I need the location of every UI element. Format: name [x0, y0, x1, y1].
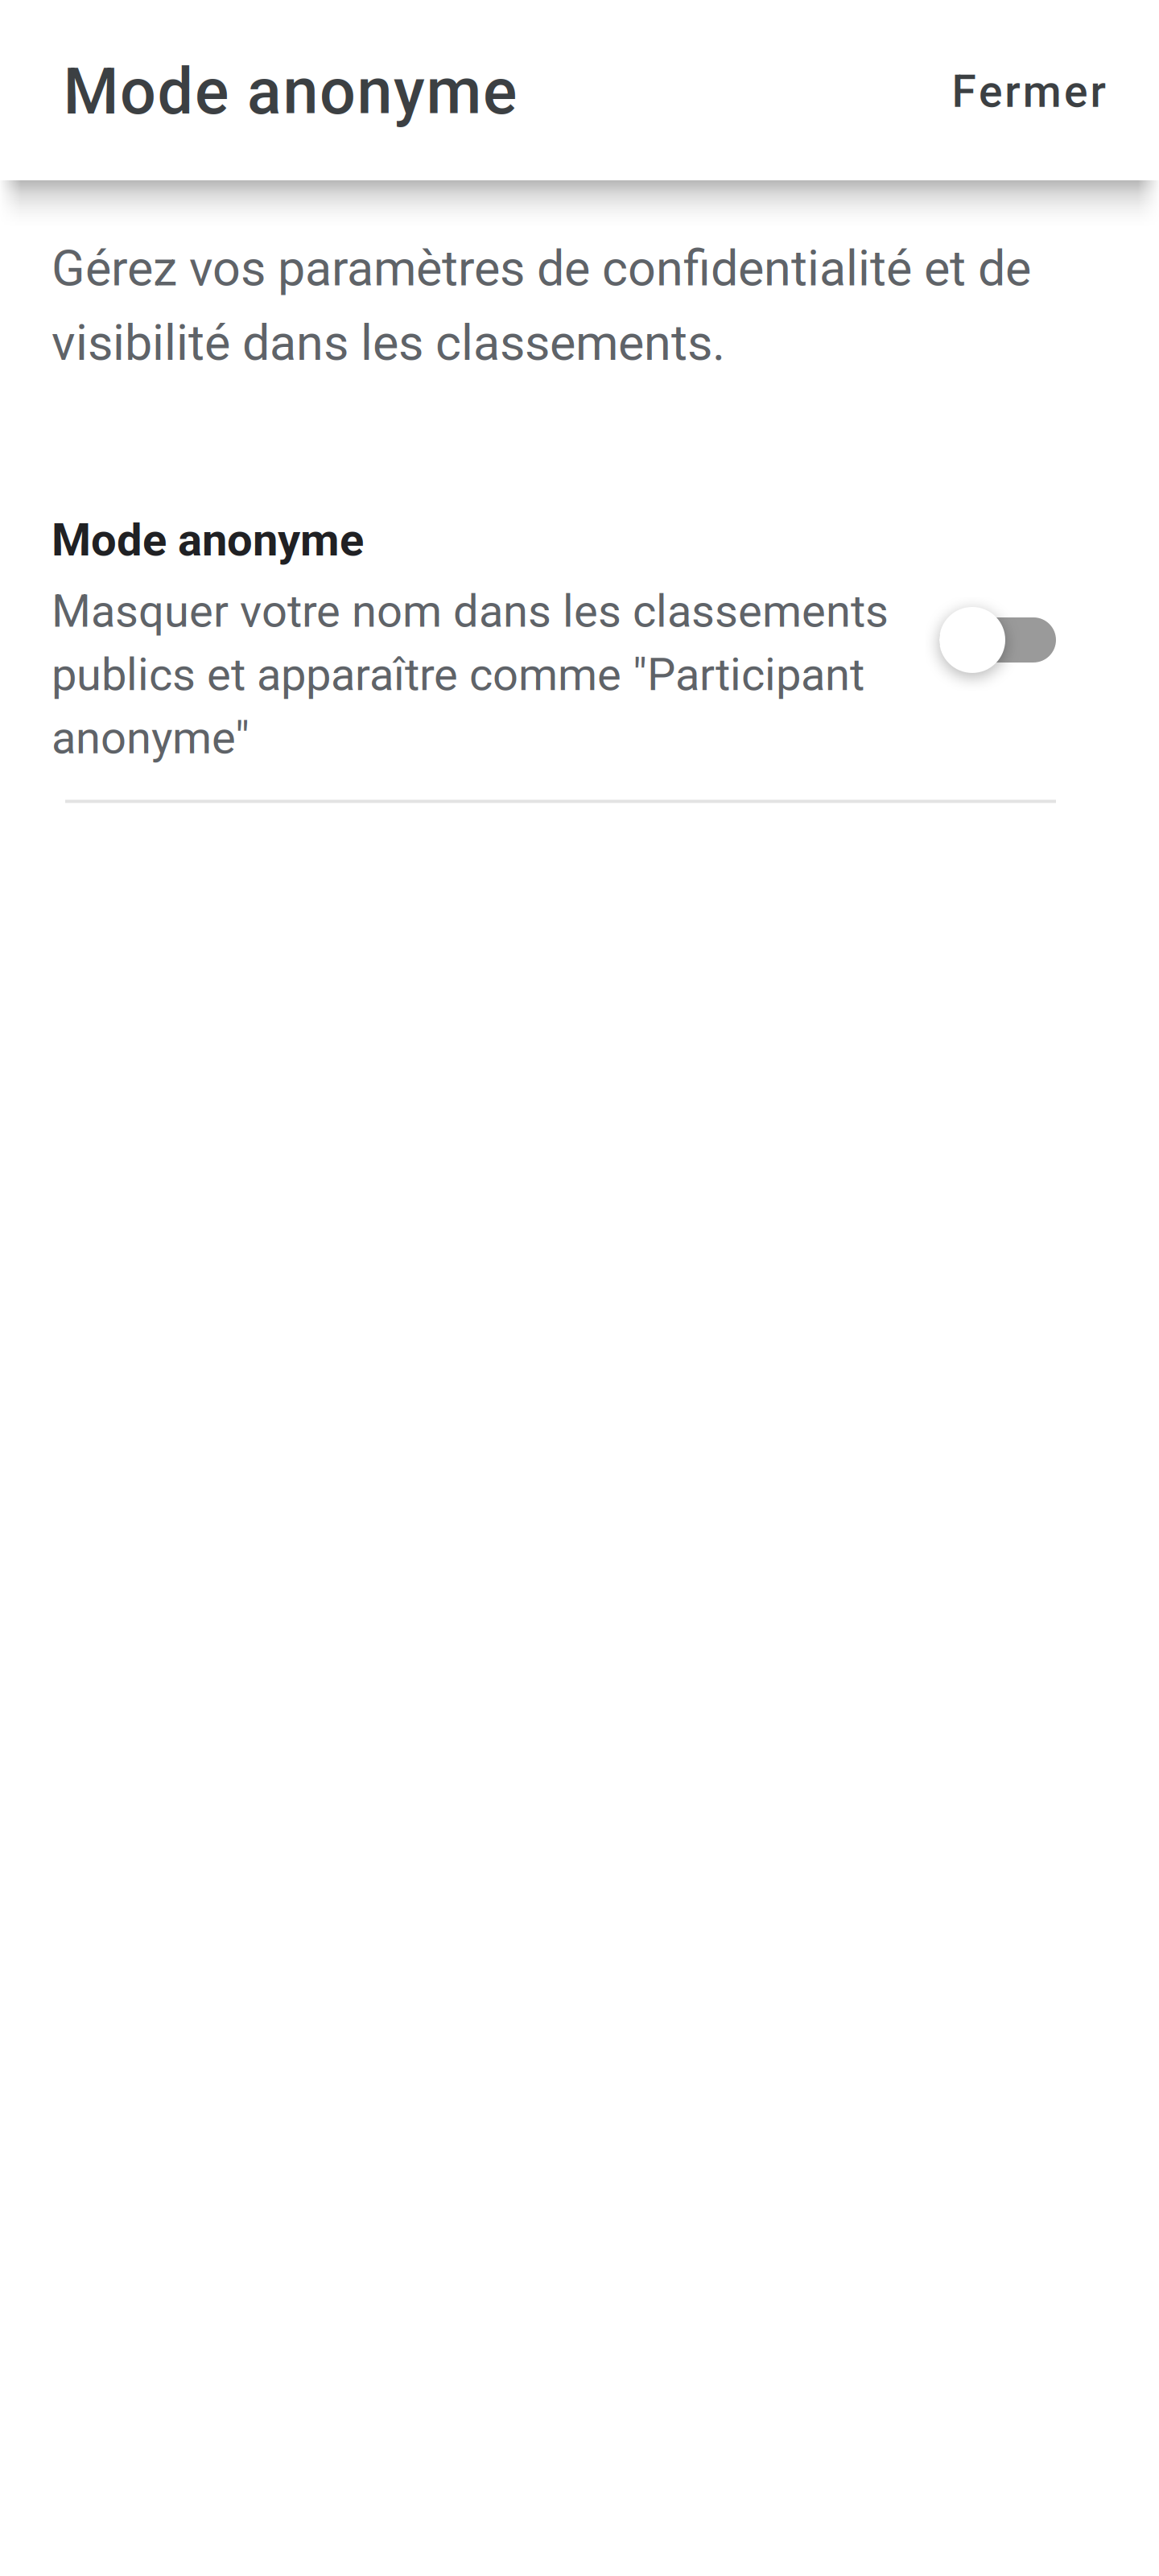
staticText: Mode anonyme: [63, 54, 534, 129]
staticText: Gérez vos paramètres de confidentialité …: [52, 240, 1031, 372]
staticText: Fermer: [952, 66, 1119, 118]
staticText: Masquer votre nom dans les classements p…: [52, 585, 889, 764]
button[interactable]: Fermer: [928, 43, 1159, 140]
staticText: Mode anonyme: [52, 514, 364, 566]
button[interactable]: Mode anonyme: [52, 514, 1056, 764]
